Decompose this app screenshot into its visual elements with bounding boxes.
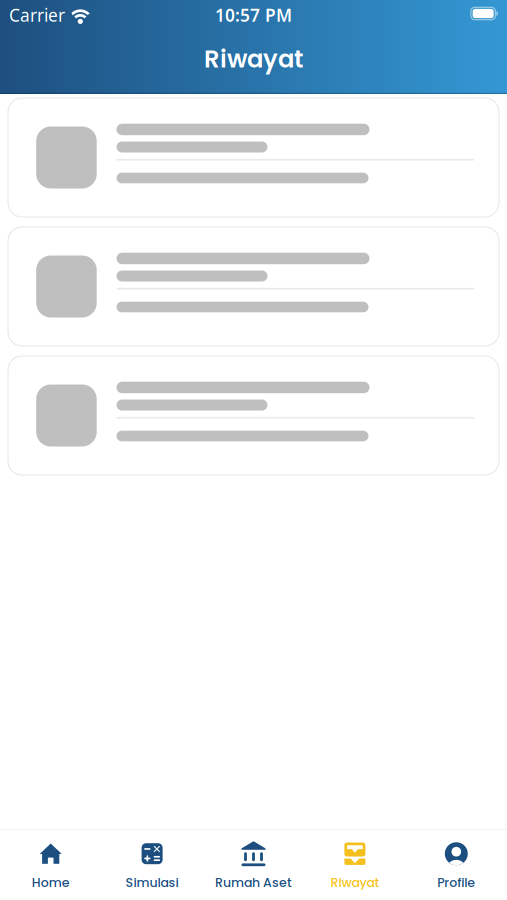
button[interactable]: Rumah Aset (203, 829, 304, 900)
button[interactable]: Riwayat (304, 829, 406, 900)
staticText: Carrier (9, 3, 65, 26)
staticText: Home (32, 874, 70, 891)
staticText: Simulasi (126, 874, 179, 891)
button[interactable]: Profile (406, 829, 507, 900)
staticText: Riwayat (204, 42, 303, 76)
staticText: Profile (437, 874, 475, 891)
staticText: 10:57 PM (215, 3, 292, 26)
staticText: Riwayat (330, 874, 379, 891)
staticText: Rumah Aset (215, 874, 292, 891)
button[interactable]: Home (0, 829, 101, 900)
button[interactable]: Simulasi (101, 829, 203, 900)
